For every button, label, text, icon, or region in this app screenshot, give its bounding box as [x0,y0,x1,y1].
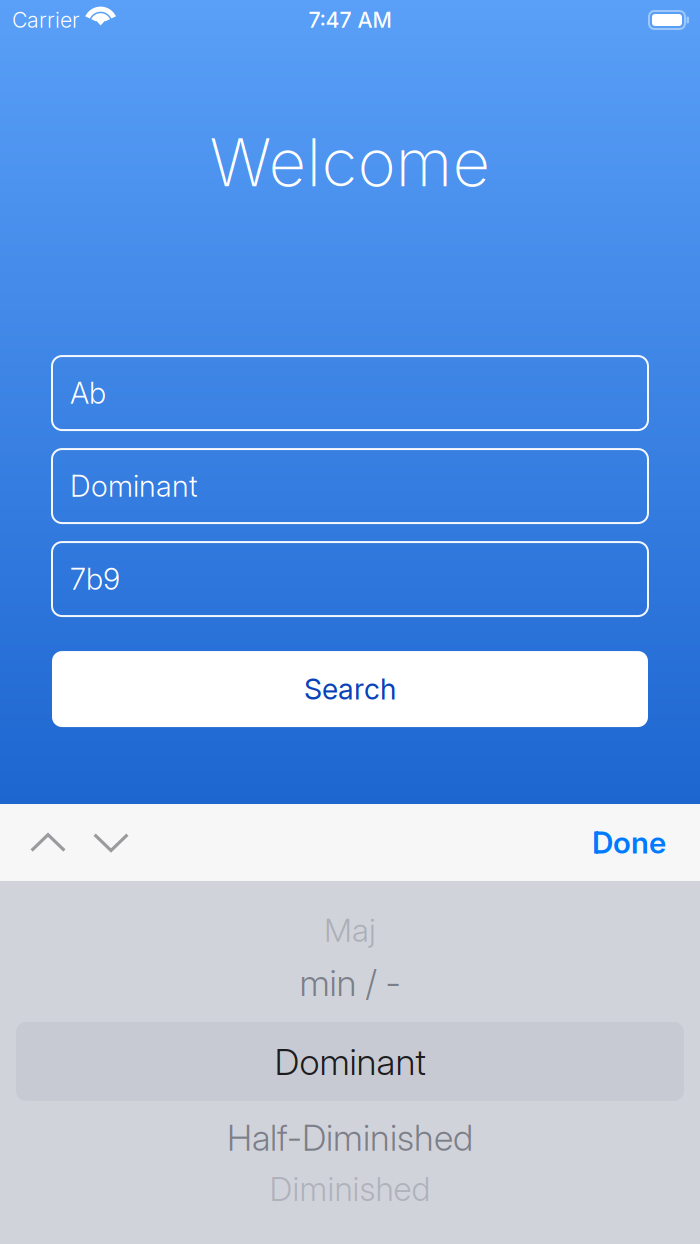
staticText: min / - [299,961,400,1005]
staticText: Maj [324,911,376,949]
button[interactable]: Dominant [52,449,648,523]
staticText: Carrier [12,7,80,33]
staticText: Half-Diminished [227,1117,473,1159]
staticText: Dominant [70,468,198,504]
button[interactable]: Next field [93,831,129,853]
button[interactable]: Ab [52,356,648,430]
staticText: 7:47 AM [308,7,391,33]
button[interactable]: Previous field [30,831,66,853]
button[interactable]: 7b9 [52,542,648,616]
staticText: 7b9 [70,561,120,597]
button[interactable]: Search [52,651,648,727]
staticText: Search [304,672,396,706]
staticText: Diminished [269,1169,430,1209]
staticText: Done [592,824,666,861]
staticText: Dominant [274,1040,425,1084]
button[interactable]: Done [592,824,666,861]
staticText: Welcome [209,123,490,202]
staticText: Ab [70,375,106,411]
